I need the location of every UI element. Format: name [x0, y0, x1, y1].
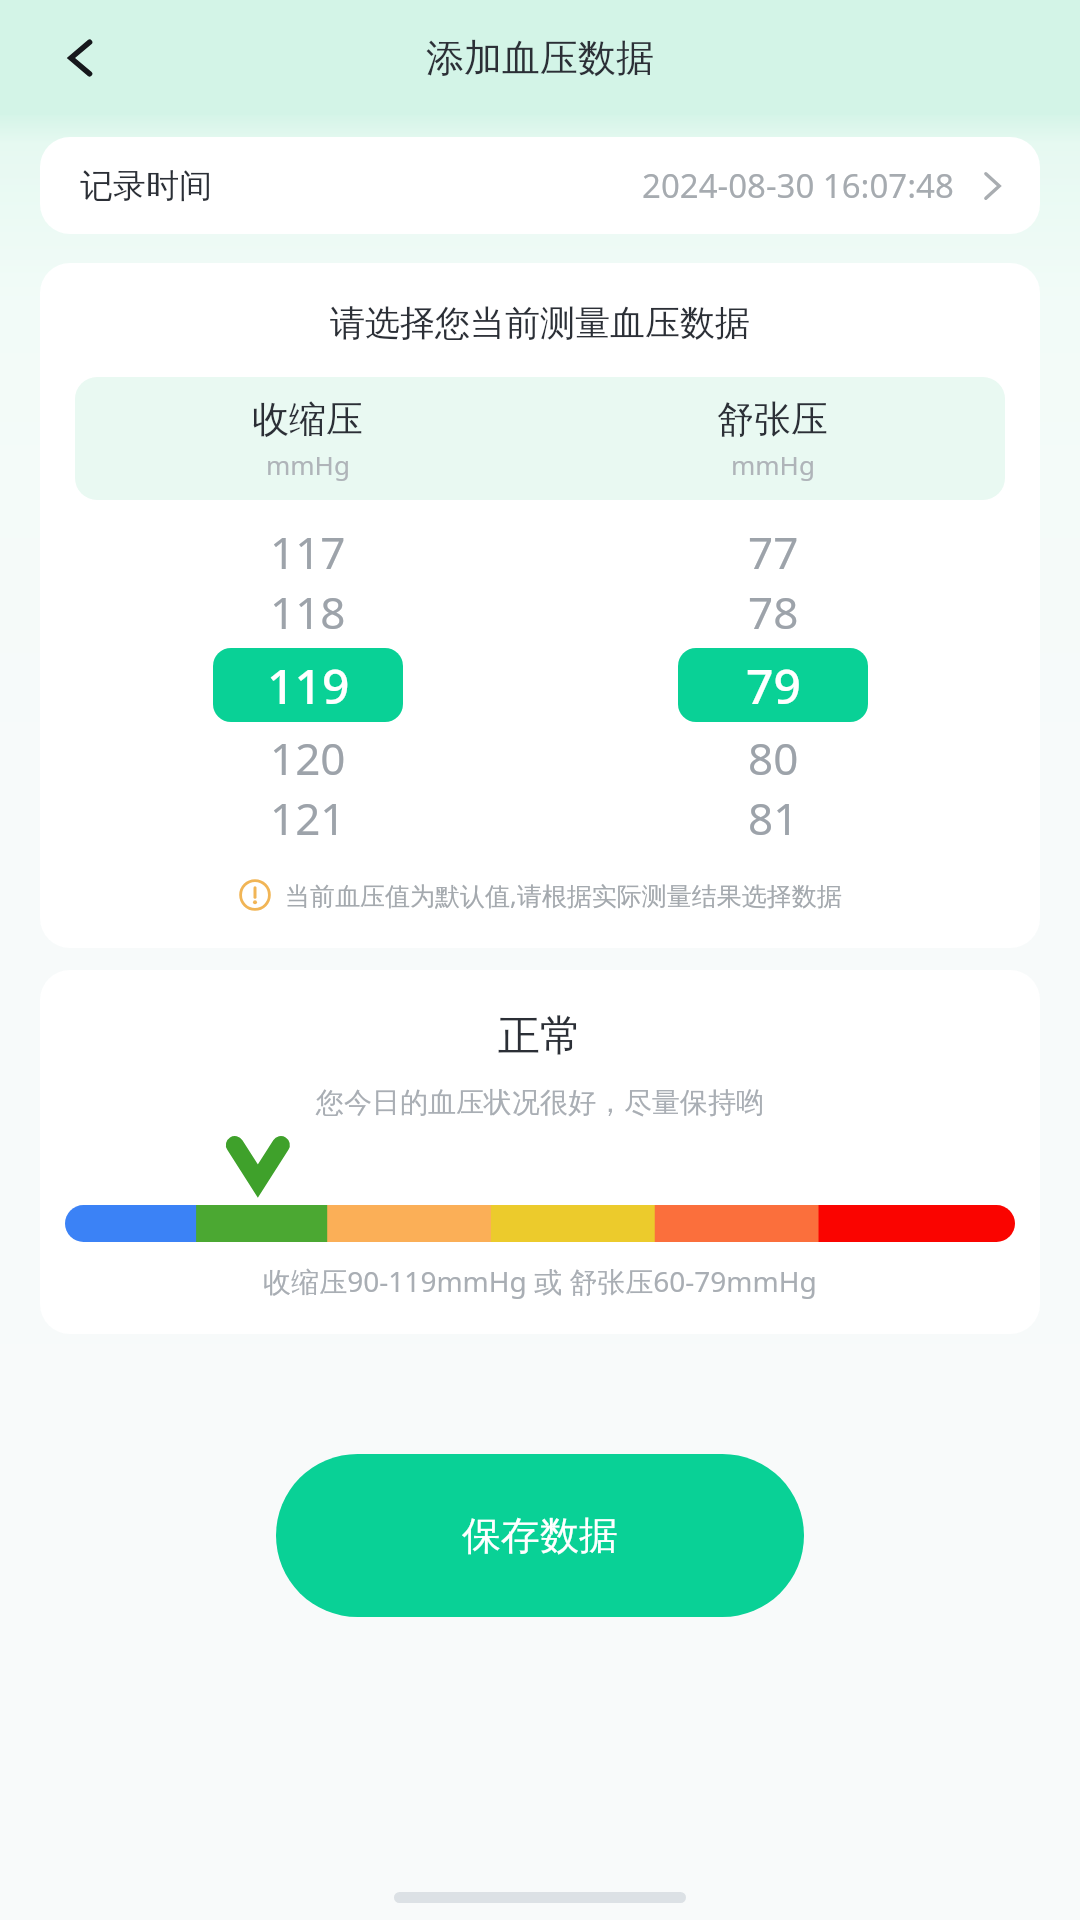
staticText: 收缩压90-119mmHg 或 舒张压60-79mmHg — [40, 1262, 1040, 1300]
button[interactable]: 80 — [678, 728, 868, 788]
staticText: mmHg — [266, 447, 350, 482]
button[interactable]: 120 — [213, 728, 403, 788]
staticText: 收缩压 — [252, 396, 363, 443]
staticText: 81 — [748, 788, 799, 848]
button[interactable]: 118 — [213, 582, 403, 642]
staticText: 80 — [748, 728, 799, 788]
button[interactable]: 记录时间 — [40, 137, 1040, 234]
staticText: mmHg — [731, 447, 815, 482]
staticText: 121 — [270, 788, 346, 848]
button[interactable]: 79 — [678, 648, 868, 722]
staticText: 117 — [270, 522, 346, 582]
button[interactable]: 117 — [213, 522, 403, 582]
button[interactable]: 77 — [678, 522, 868, 582]
button[interactable]: 保存数据 — [276, 1454, 804, 1617]
button[interactable]: 78 — [678, 582, 868, 642]
staticText: 119 — [267, 653, 350, 718]
staticText: 您今日的血压状况很好，尽量保持哟 — [40, 1085, 1040, 1120]
staticText: 当前血压值为默认值,请根据实际测量结果选择数据 — [285, 878, 842, 912]
staticText: 77 — [748, 522, 799, 582]
staticText: 78 — [748, 582, 799, 642]
staticText: 118 — [270, 582, 346, 642]
staticText: 记录时间 — [80, 165, 212, 207]
button[interactable]: 81 — [678, 788, 868, 848]
button[interactable]: Back — [42, 19, 120, 97]
staticText: 2024-08-30 16:07:48 — [642, 163, 954, 208]
staticText: 舒张压 — [717, 396, 828, 443]
button[interactable]: 121 — [213, 788, 403, 848]
staticText: 添加血压数据 — [426, 34, 654, 82]
staticText: 120 — [270, 728, 346, 788]
staticText: 79 — [746, 653, 801, 718]
button[interactable]: 119 — [213, 648, 403, 722]
staticText: 保存数据 — [462, 1511, 618, 1560]
staticText: 正常 — [40, 1010, 1040, 1063]
staticText: 请选择您当前测量血压数据 — [40, 301, 1040, 345]
